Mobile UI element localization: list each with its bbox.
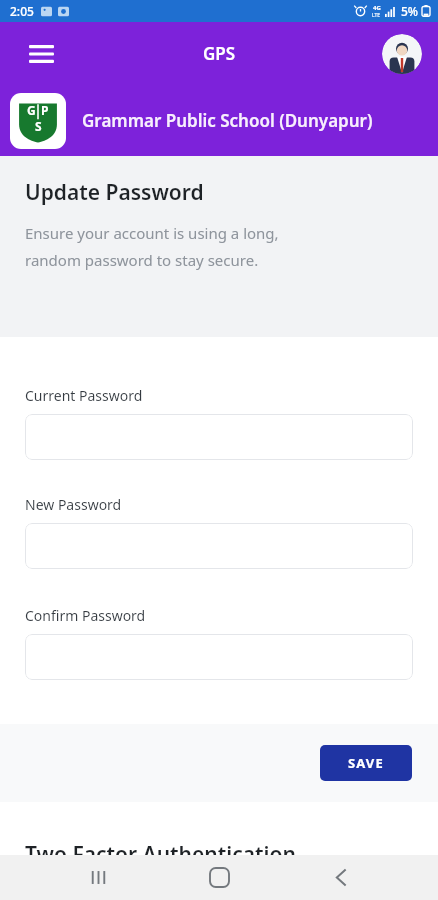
button[interactable]	[25, 523, 413, 569]
staticText: S	[35, 118, 42, 134]
button[interactable]: Back	[317, 855, 365, 900]
staticText: Ensure your account is using a long,	[25, 223, 279, 243]
staticText: New Password	[25, 495, 122, 514]
staticText: Current Password	[25, 386, 143, 405]
button[interactable]: SAVE	[320, 745, 412, 781]
staticText: 4G	[373, 4, 381, 12]
staticText: G	[27, 102, 36, 118]
staticText: GPS	[203, 42, 236, 65]
staticText: Two Factor Authentication	[25, 840, 296, 855]
staticText: Confirm Password	[25, 606, 146, 625]
button[interactable]	[25, 634, 413, 680]
button[interactable]: Recent apps	[74, 855, 122, 900]
staticText: 5%	[401, 3, 419, 19]
button[interactable]: Open navigation menu	[18, 31, 64, 77]
staticText: SAVE	[348, 754, 384, 772]
button[interactable]: Home	[195, 855, 243, 900]
staticText: Grammar Public School (Dunyapur)	[82, 109, 373, 132]
staticText: LTE	[372, 12, 381, 19]
button[interactable]	[25, 414, 413, 460]
staticText: Update Password	[25, 178, 204, 207]
button[interactable]: Profile	[382, 34, 422, 74]
staticText: P	[41, 102, 49, 118]
staticText: 2:05	[10, 3, 34, 19]
staticText: random password to stay secure.	[25, 250, 259, 270]
